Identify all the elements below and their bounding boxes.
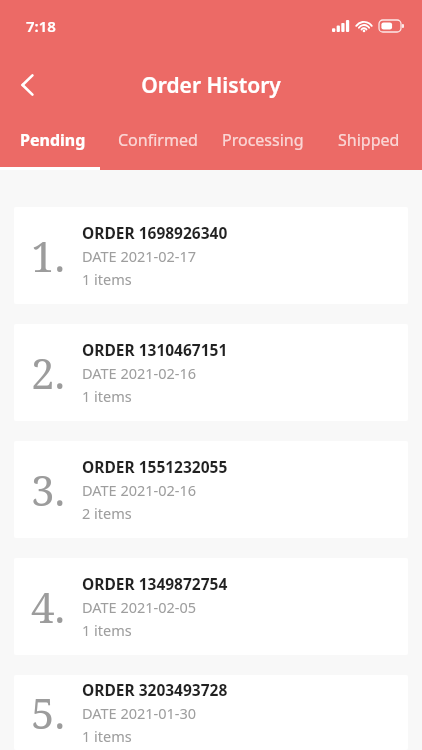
staticText: DATE 2021-01-30 bbox=[82, 703, 197, 723]
staticText: 2 items bbox=[82, 503, 132, 523]
staticText: DATE 2021-02-05 bbox=[82, 597, 197, 617]
staticText: Order History bbox=[141, 71, 281, 100]
staticText: 3. bbox=[31, 461, 65, 518]
staticText: DATE 2021-02-17 bbox=[82, 246, 197, 266]
staticText: 4. bbox=[31, 578, 65, 635]
staticText: ORDER 1349872754 bbox=[82, 573, 228, 594]
staticText: Processing bbox=[222, 129, 304, 151]
button[interactable]: Processing bbox=[210, 118, 316, 170]
staticText: 2. bbox=[31, 344, 65, 401]
staticText: Confirmed bbox=[118, 129, 198, 151]
button[interactable]: Back bbox=[1, 59, 53, 111]
staticText: 5. bbox=[31, 684, 65, 741]
staticText: 1 items bbox=[82, 620, 132, 640]
staticText: 7:18 bbox=[26, 16, 56, 36]
button[interactable]: 3. bbox=[14, 441, 408, 538]
staticText: ORDER 1310467151 bbox=[82, 339, 228, 360]
staticText: 1 items bbox=[82, 726, 132, 746]
staticText: Pending bbox=[20, 129, 86, 151]
button[interactable]: 5. bbox=[14, 675, 408, 750]
button[interactable]: Pending bbox=[0, 118, 105, 170]
button[interactable]: 1. bbox=[14, 207, 408, 304]
button[interactable]: 2. bbox=[14, 324, 408, 421]
staticText: ORDER 1698926340 bbox=[82, 222, 228, 243]
button[interactable]: Confirmed bbox=[105, 118, 210, 170]
staticText: DATE 2021-02-16 bbox=[82, 480, 197, 500]
staticText: DATE 2021-02-16 bbox=[82, 363, 197, 383]
staticText: 1 items bbox=[82, 269, 132, 289]
staticText: ORDER 1551232055 bbox=[82, 456, 228, 477]
staticText: 1 items bbox=[82, 386, 132, 406]
button[interactable]: 4. bbox=[14, 558, 408, 655]
button[interactable]: Shipped bbox=[316, 118, 422, 170]
staticText: 1. bbox=[31, 227, 65, 284]
staticText: Shipped bbox=[338, 129, 400, 151]
staticText: ORDER 3203493728 bbox=[82, 679, 228, 700]
